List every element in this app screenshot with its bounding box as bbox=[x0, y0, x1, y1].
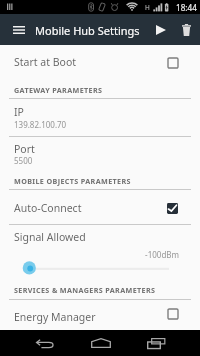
staticText: Signal Allowed bbox=[14, 230, 86, 244]
button[interactable]: Unchecked bbox=[162, 52, 184, 74]
staticText: Port bbox=[14, 142, 35, 156]
staticText: H bbox=[145, 3, 150, 12]
button[interactable] bbox=[0, 224, 200, 279]
button[interactable]: Home bbox=[83, 330, 118, 356]
button[interactable]: Start bbox=[145, 14, 176, 45]
staticText: MOBILE OBJECTS PARAMETERS bbox=[14, 176, 131, 186]
staticText: Energy Manager bbox=[14, 310, 96, 324]
button[interactable] bbox=[0, 98, 200, 136]
staticText: GATEWAY PARAMETERS bbox=[14, 85, 103, 95]
staticText: 18:44 bbox=[176, 2, 197, 13]
button[interactable] bbox=[0, 299, 200, 331]
staticText: 139.82.100.70 bbox=[14, 119, 67, 130]
staticText: Auto-Connect bbox=[14, 201, 82, 215]
button[interactable]: Delete bbox=[171, 14, 200, 45]
button[interactable] bbox=[0, 189, 200, 224]
button[interactable] bbox=[0, 136, 200, 169]
staticText: SERVICES & MANAGERS PARAMETERS bbox=[14, 285, 156, 295]
button[interactable]: Recents bbox=[138, 330, 173, 356]
button[interactable]: Unchecked bbox=[162, 303, 184, 325]
staticText: Mobile Hub Settings bbox=[35, 23, 140, 38]
button[interactable]: Back bbox=[27, 330, 62, 356]
staticText: IP bbox=[14, 105, 24, 119]
staticText: 5500 bbox=[14, 155, 33, 166]
button[interactable]: Menu bbox=[3, 14, 34, 45]
staticText: Start at Boot bbox=[14, 55, 77, 69]
staticText: -100dBm bbox=[0, 249, 179, 260]
button[interactable] bbox=[0, 44, 200, 74]
button[interactable]: Checked bbox=[161, 197, 184, 220]
